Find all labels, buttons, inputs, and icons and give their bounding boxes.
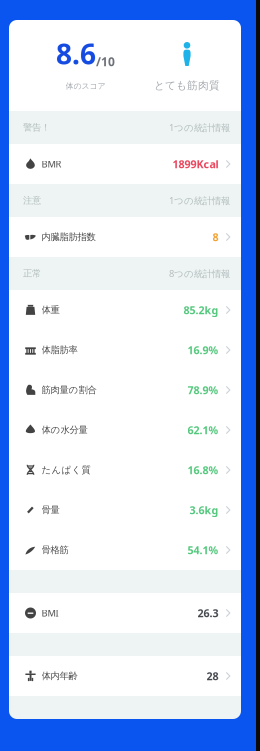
staticText: 26.3: [197, 606, 218, 620]
staticText: 骨量: [41, 504, 59, 516]
button[interactable]: 骨量: [9, 490, 241, 530]
button[interactable]: 体重: [9, 290, 241, 330]
staticText: 体内年齢: [41, 670, 77, 682]
staticText: 1つの統計情報: [169, 194, 230, 207]
staticText: 16.9%: [187, 343, 218, 357]
button[interactable]: BMR: [9, 144, 241, 184]
staticText: 16.8%: [187, 463, 218, 477]
staticText: BMI: [41, 607, 58, 619]
staticText: 8つの統計情報: [169, 267, 230, 280]
button[interactable]: 内臓脂肪指数: [9, 217, 241, 257]
staticText: 78.9%: [187, 383, 218, 397]
button[interactable]: 体内年齢: [9, 656, 241, 696]
staticText: 筋肉量の割合: [41, 384, 96, 396]
button[interactable]: 体の水分量: [9, 410, 241, 450]
staticText: 警告！: [23, 122, 50, 133]
staticText: 62.1%: [187, 423, 218, 437]
button[interactable]: 骨格筋: [9, 530, 241, 570]
button[interactable]: BMI: [9, 593, 241, 633]
staticText: 8.6: [56, 35, 96, 72]
staticText: 正常: [23, 268, 41, 279]
staticText: 8: [212, 230, 218, 244]
staticText: 1899Kcal: [172, 157, 218, 171]
staticText: 85.2kg: [183, 303, 218, 317]
button[interactable]: 体脂肪率: [9, 330, 241, 370]
staticText: 注意: [23, 195, 41, 206]
staticText: 体重: [41, 304, 59, 316]
staticText: 内臓脂肪指数: [41, 231, 95, 243]
staticText: 3.6kg: [189, 503, 218, 517]
staticText: たんぱく質: [41, 464, 90, 476]
staticText: 骨格筋: [41, 544, 68, 556]
staticText: 体の水分量: [41, 424, 87, 436]
staticText: 体のスコア: [65, 81, 105, 91]
staticText: 28: [206, 669, 218, 683]
staticText: 1つの統計情報: [169, 121, 230, 134]
staticText: とても筋肉質: [154, 79, 220, 92]
staticText: /10: [96, 54, 115, 70]
button[interactable]: たんぱく質: [9, 450, 241, 490]
staticText: BMR: [41, 158, 61, 170]
staticText: 54.1%: [187, 543, 218, 557]
button[interactable]: 筋肉量の割合: [9, 370, 241, 410]
staticText: 体脂肪率: [41, 344, 77, 356]
